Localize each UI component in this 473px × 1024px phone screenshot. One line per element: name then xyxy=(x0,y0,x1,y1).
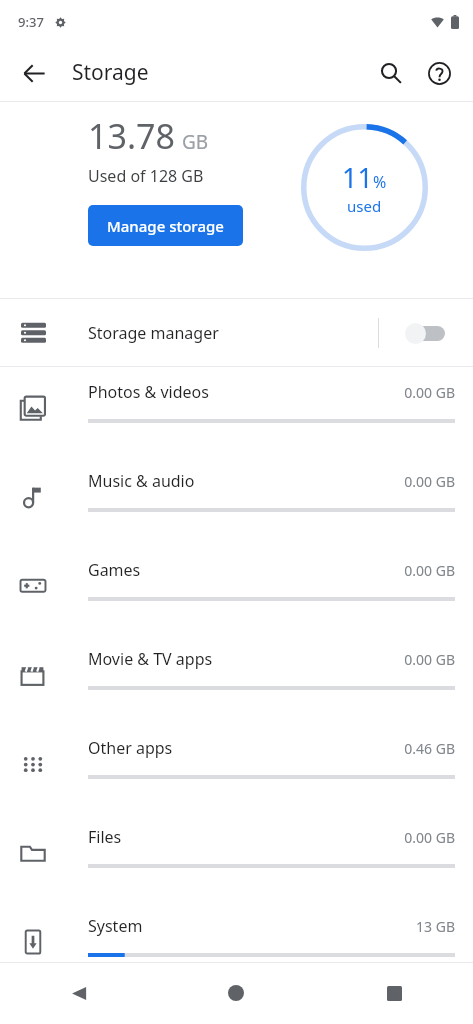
staticText: 0.46 GB xyxy=(404,739,455,758)
staticText: Storage xyxy=(72,58,149,87)
button[interactable]: Recent apps xyxy=(315,962,473,1024)
staticText: Movie & TV apps xyxy=(88,648,213,670)
staticText: Other apps xyxy=(88,737,173,759)
button[interactable]: Other apps xyxy=(0,723,473,812)
button[interactable]: Files xyxy=(0,812,473,901)
button[interactable]: Games xyxy=(0,545,473,634)
button[interactable]: Music & audio xyxy=(0,456,473,545)
button[interactable]: Photos & videos xyxy=(0,367,473,456)
staticText: 0.00 GB xyxy=(404,472,455,491)
staticText: Photos & videos xyxy=(88,381,209,403)
button[interactable]: Home xyxy=(157,962,315,1024)
button[interactable]: Back xyxy=(10,49,58,97)
button[interactable]: Search xyxy=(367,49,415,97)
staticText: Games xyxy=(88,559,141,581)
button[interactable]: Storage manager toggle xyxy=(399,313,455,353)
staticText: 0.00 GB xyxy=(404,828,455,847)
button[interactable]: Manage storage xyxy=(88,205,243,246)
button[interactable]: Back xyxy=(0,962,157,1024)
staticText: 9:37 xyxy=(18,13,44,31)
button[interactable]: Storage manager xyxy=(0,299,473,366)
staticText: Manage storage xyxy=(107,216,224,236)
staticText: % xyxy=(373,171,387,193)
staticText: Music & audio xyxy=(88,470,195,492)
staticText: 13 GB xyxy=(416,917,455,936)
staticText: 11 xyxy=(342,159,373,196)
staticText: 0.00 GB xyxy=(404,561,455,580)
staticText: 0.00 GB xyxy=(404,383,455,402)
staticText: 13.78 xyxy=(88,113,175,159)
staticText: Files xyxy=(88,826,122,848)
staticText: GB xyxy=(182,129,209,155)
button[interactable]: System xyxy=(0,901,473,990)
staticText: System xyxy=(88,915,143,937)
staticText: used xyxy=(347,196,382,216)
button[interactable]: Help xyxy=(415,49,463,97)
staticText: 0.00 GB xyxy=(404,650,455,669)
staticText: Used of 128 GB xyxy=(88,165,204,187)
staticText: Storage manager xyxy=(88,322,219,344)
button[interactable]: Movie & TV apps xyxy=(0,634,473,723)
